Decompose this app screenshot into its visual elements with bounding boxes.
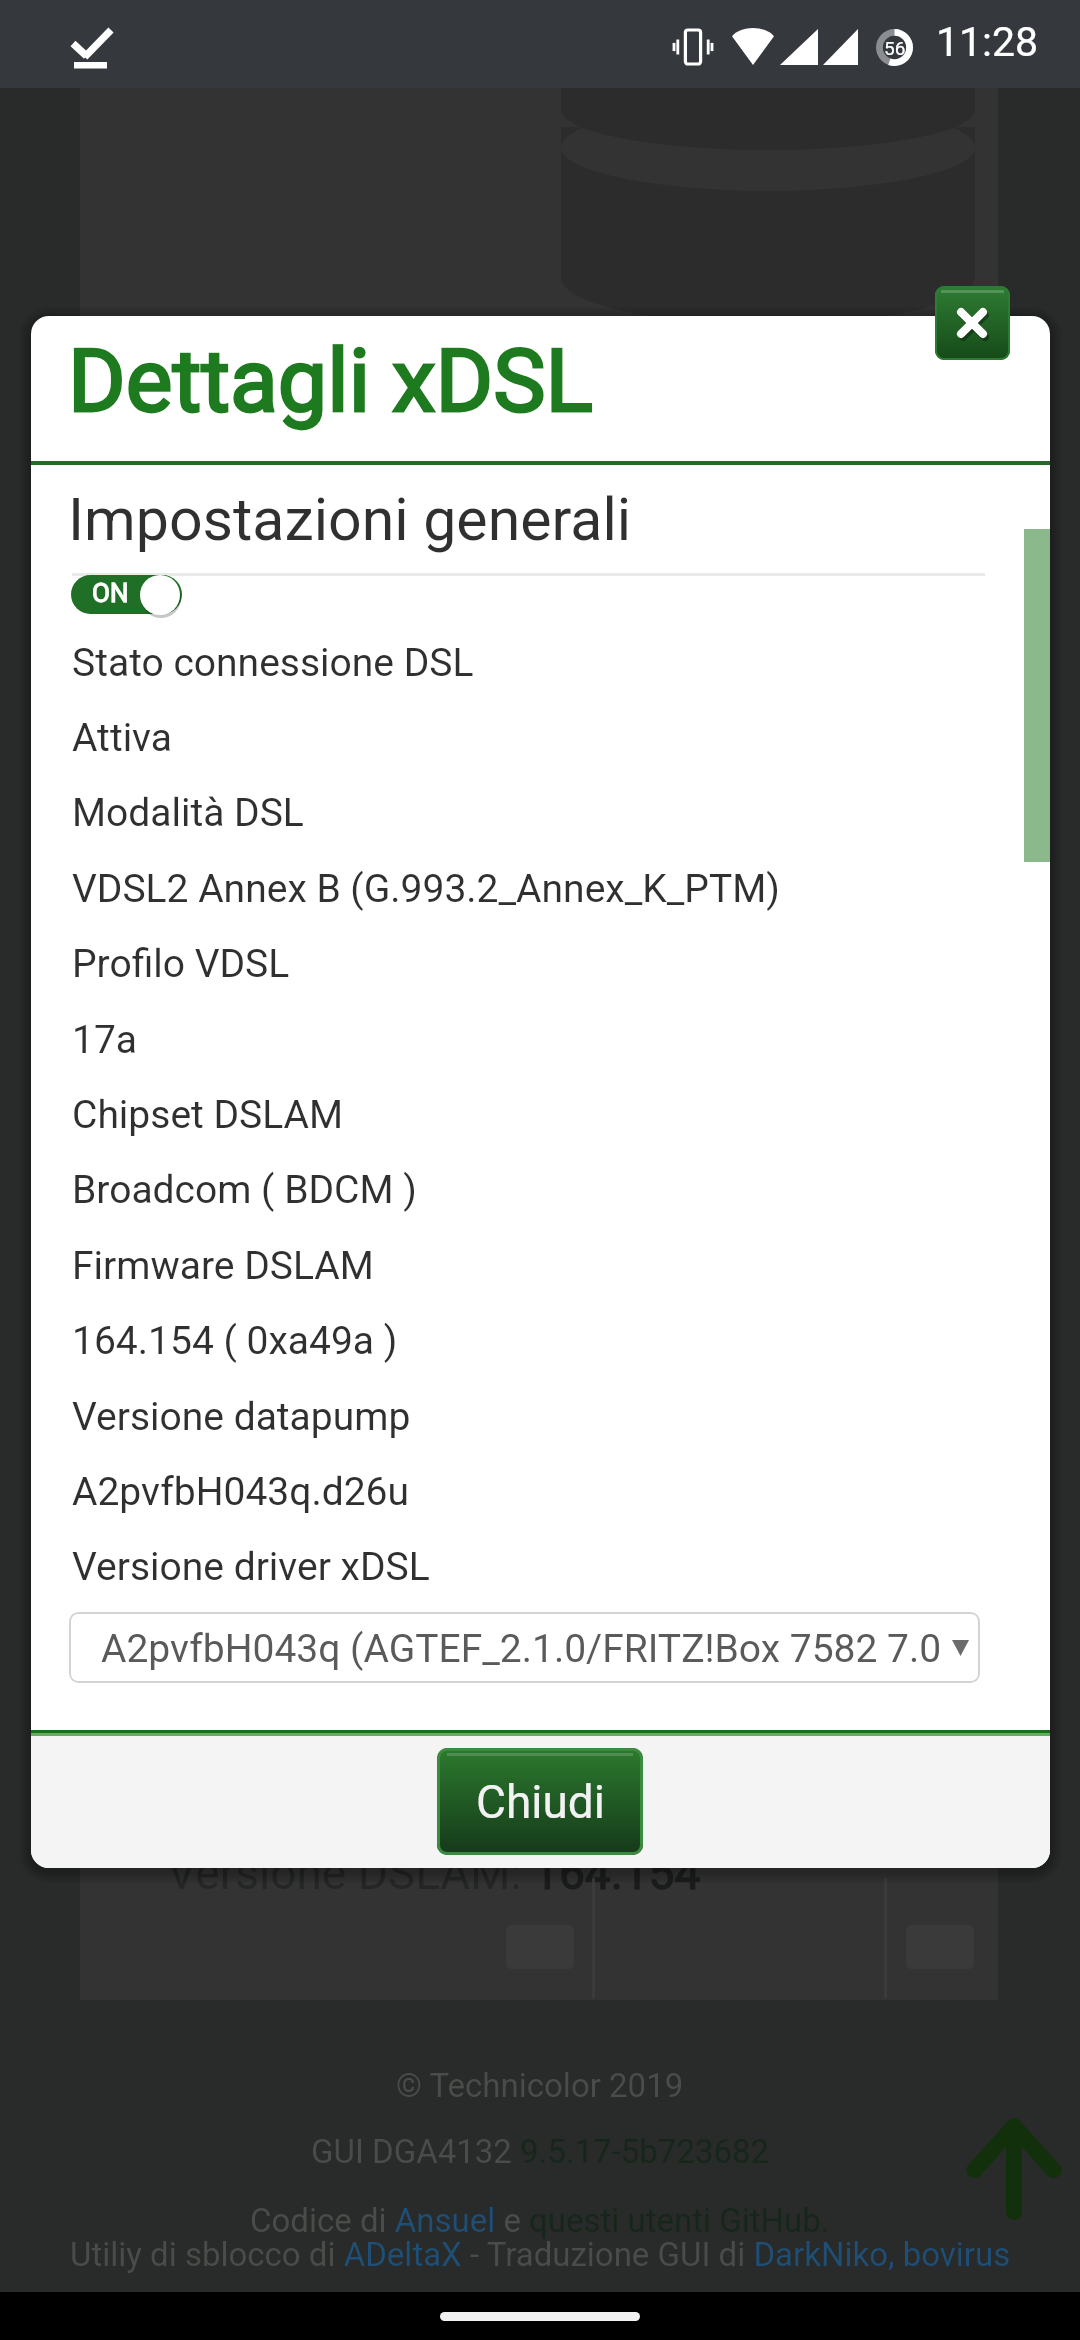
staticText: Broadcom ( BDCM ) <box>72 1167 417 1213</box>
staticText: Firmware DSLAM <box>72 1243 374 1289</box>
staticText: 56 <box>884 37 906 59</box>
staticText: Modalità DSL <box>72 790 304 836</box>
staticText: Attiva <box>72 715 172 761</box>
staticText: Versione DSLAM: 164.154 <box>167 1846 701 1900</box>
staticText: GUI DGA4132 9.5.17-5b723682 <box>311 2132 770 2171</box>
staticText: Chipset DSLAM <box>72 1092 344 1138</box>
staticText: Utiliy di sblocco di ADeltaX - Traduzion… <box>70 2235 1011 2274</box>
staticText: Versione datapump <box>72 1394 411 1440</box>
staticText: 164.154 ( 0xa49a ) <box>72 1318 398 1364</box>
staticText: Chiudi <box>476 1775 605 1829</box>
staticText: 11:28 <box>936 18 1039 66</box>
staticText: ON <box>92 578 129 608</box>
staticText: Stato connessione DSL <box>72 640 474 686</box>
staticText: Profilo VDSL <box>72 941 290 987</box>
button[interactable]: Chiudi <box>935 286 1010 360</box>
staticText: Dettagli xDSL <box>68 329 593 432</box>
staticText: A2pvfbH043q.d26u <box>72 1469 410 1515</box>
staticText: © Technicolor 2019 <box>396 2066 684 2105</box>
staticText: Versione driver xDSL <box>72 1544 430 1590</box>
staticText: Impostazioni generali <box>68 485 632 554</box>
staticText: A2pvfbH043q (AGTEF_2.1.0/FRITZ!Box 7582 … <box>101 1626 942 1672</box>
staticText: 17a <box>72 1017 138 1063</box>
button[interactable]: Chiudi <box>437 1748 643 1855</box>
staticText: Codice di Ansuel e questi utenti GitHub. <box>250 2201 830 2240</box>
button[interactable]: Torna su <box>969 2121 1059 2212</box>
button[interactable]: ON <box>71 575 182 614</box>
button[interactable]: A2pvfbH043q (AGTEF_2.1.0/FRITZ!Box 7582 … <box>69 1612 980 1683</box>
staticText: VDSL2 Annex B (G.993.2_Annex_K_PTM) <box>72 866 780 912</box>
